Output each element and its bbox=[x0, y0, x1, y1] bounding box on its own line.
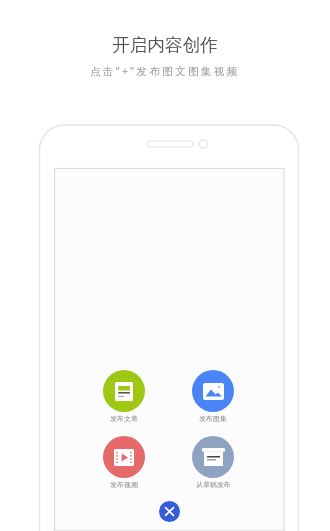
button[interactable]: 发布视频 bbox=[103, 436, 145, 489]
staticText: 发布图集 bbox=[199, 414, 227, 423]
staticText: 点击“+”发布图文图集视频 bbox=[90, 64, 240, 78]
button[interactable]: Close bbox=[159, 501, 180, 522]
staticText: 从草稿发布 bbox=[196, 480, 231, 489]
button[interactable]: 从草稿发布 bbox=[192, 436, 234, 489]
staticText: 开启内容创作 bbox=[112, 34, 218, 56]
button[interactable]: 发布图集 bbox=[192, 370, 234, 423]
staticText: 发布文章 bbox=[110, 414, 138, 423]
button[interactable]: 发布文章 bbox=[103, 370, 145, 423]
staticText: 发布视频 bbox=[110, 480, 138, 489]
